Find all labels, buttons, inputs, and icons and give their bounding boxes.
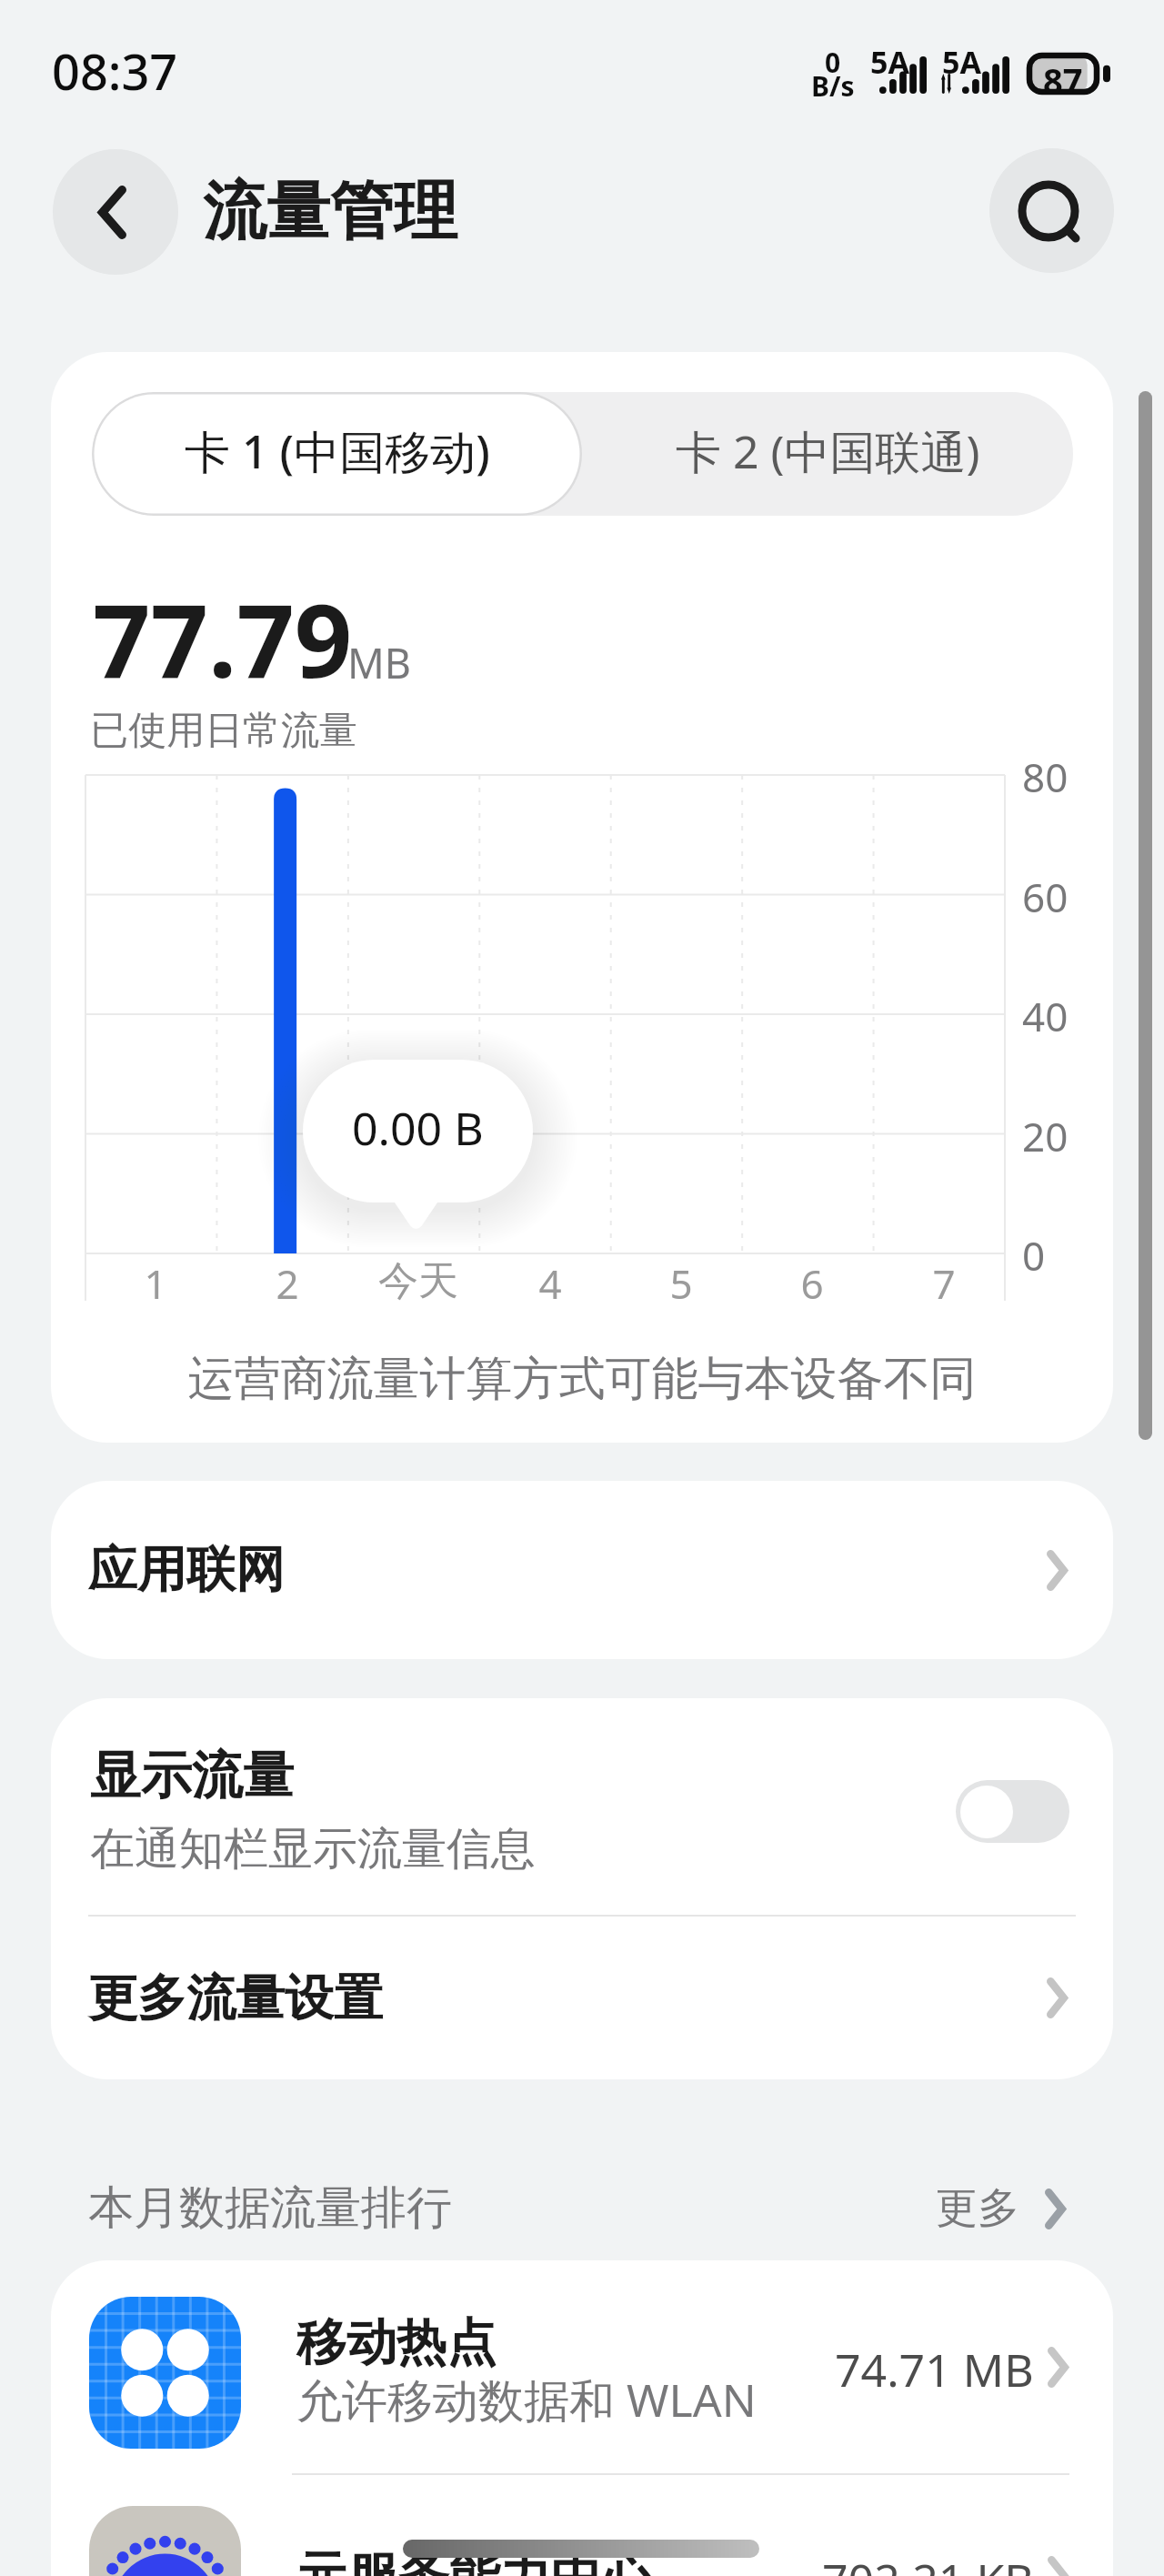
staticText: 4 — [538, 1256, 562, 1311]
staticText: 应用联网 — [88, 1539, 285, 1601]
staticText: 74.71 MB — [835, 2339, 1034, 2400]
staticText: 80 — [1022, 750, 1069, 804]
staticText: 0.00 B — [352, 1097, 484, 1159]
staticText: 1 — [144, 1256, 167, 1311]
staticText: MB — [347, 635, 412, 690]
staticText: 流量管理 — [203, 172, 457, 252]
button[interactable]: 显示流量 toggle — [956, 1780, 1069, 1843]
staticText: 元服务能力中心 — [296, 2544, 653, 2576]
staticText: 7 — [932, 1256, 956, 1311]
staticText: 702.21 KB — [822, 2549, 1034, 2576]
staticText: 今天 — [378, 1256, 458, 1306]
button[interactable]: 卡 2 (中国联通) — [582, 392, 1073, 516]
staticText: 在通知栏显示流量信息 — [90, 1821, 536, 1877]
staticText: 60 — [1022, 870, 1069, 924]
staticText: 0 — [825, 44, 841, 81]
button[interactable]: 元服务能力中心 — [51, 2475, 1113, 2576]
button[interactable]: 更多 — [936, 2182, 1066, 2235]
staticText: 显示流量 — [90, 1744, 294, 1808]
staticText: 本月数据流量排行 — [88, 2179, 452, 2237]
button[interactable]: 显示流量 — [51, 1698, 1113, 1915]
staticText: B/s — [811, 67, 855, 105]
button[interactable]: 移动热点 — [51, 2260, 1113, 2473]
staticText: 0 — [1022, 1228, 1046, 1283]
button[interactable]: Search — [989, 148, 1114, 273]
staticText: 2 — [276, 1256, 299, 1311]
staticText: 运营商流量计算方式可能与本设备不同 — [0, 1350, 1164, 1408]
button[interactable]: 更多流量设置 — [51, 1917, 1113, 2079]
staticText: 允许移动数据和 WLAN — [296, 2369, 757, 2430]
staticText: 6 — [800, 1256, 824, 1311]
staticText: 08:37 — [52, 37, 178, 105]
button[interactable]: 卡 1 (中国移动) — [92, 392, 582, 516]
staticText: 5A — [942, 41, 981, 83]
staticText: 卡 1 (中国移动) — [185, 420, 490, 482]
staticText: 87 — [1043, 56, 1083, 104]
staticText: 5A — [870, 41, 909, 83]
staticText: 已使用日常流量 — [90, 707, 357, 755]
staticText: 40 — [1022, 989, 1069, 1043]
staticText: 20 — [1022, 1109, 1069, 1163]
staticText: 卡 2 (中国联通) — [676, 420, 980, 482]
staticText: 更多 — [936, 2182, 1019, 2235]
button[interactable]: 应用联网 — [51, 1481, 1113, 1659]
staticText: 移动热点 — [296, 2311, 497, 2374]
staticText: 更多流量设置 — [88, 1967, 383, 2029]
staticText: 5 — [669, 1256, 693, 1311]
button[interactable]: Back — [53, 149, 178, 275]
staticText: 77.79 — [93, 569, 353, 707]
